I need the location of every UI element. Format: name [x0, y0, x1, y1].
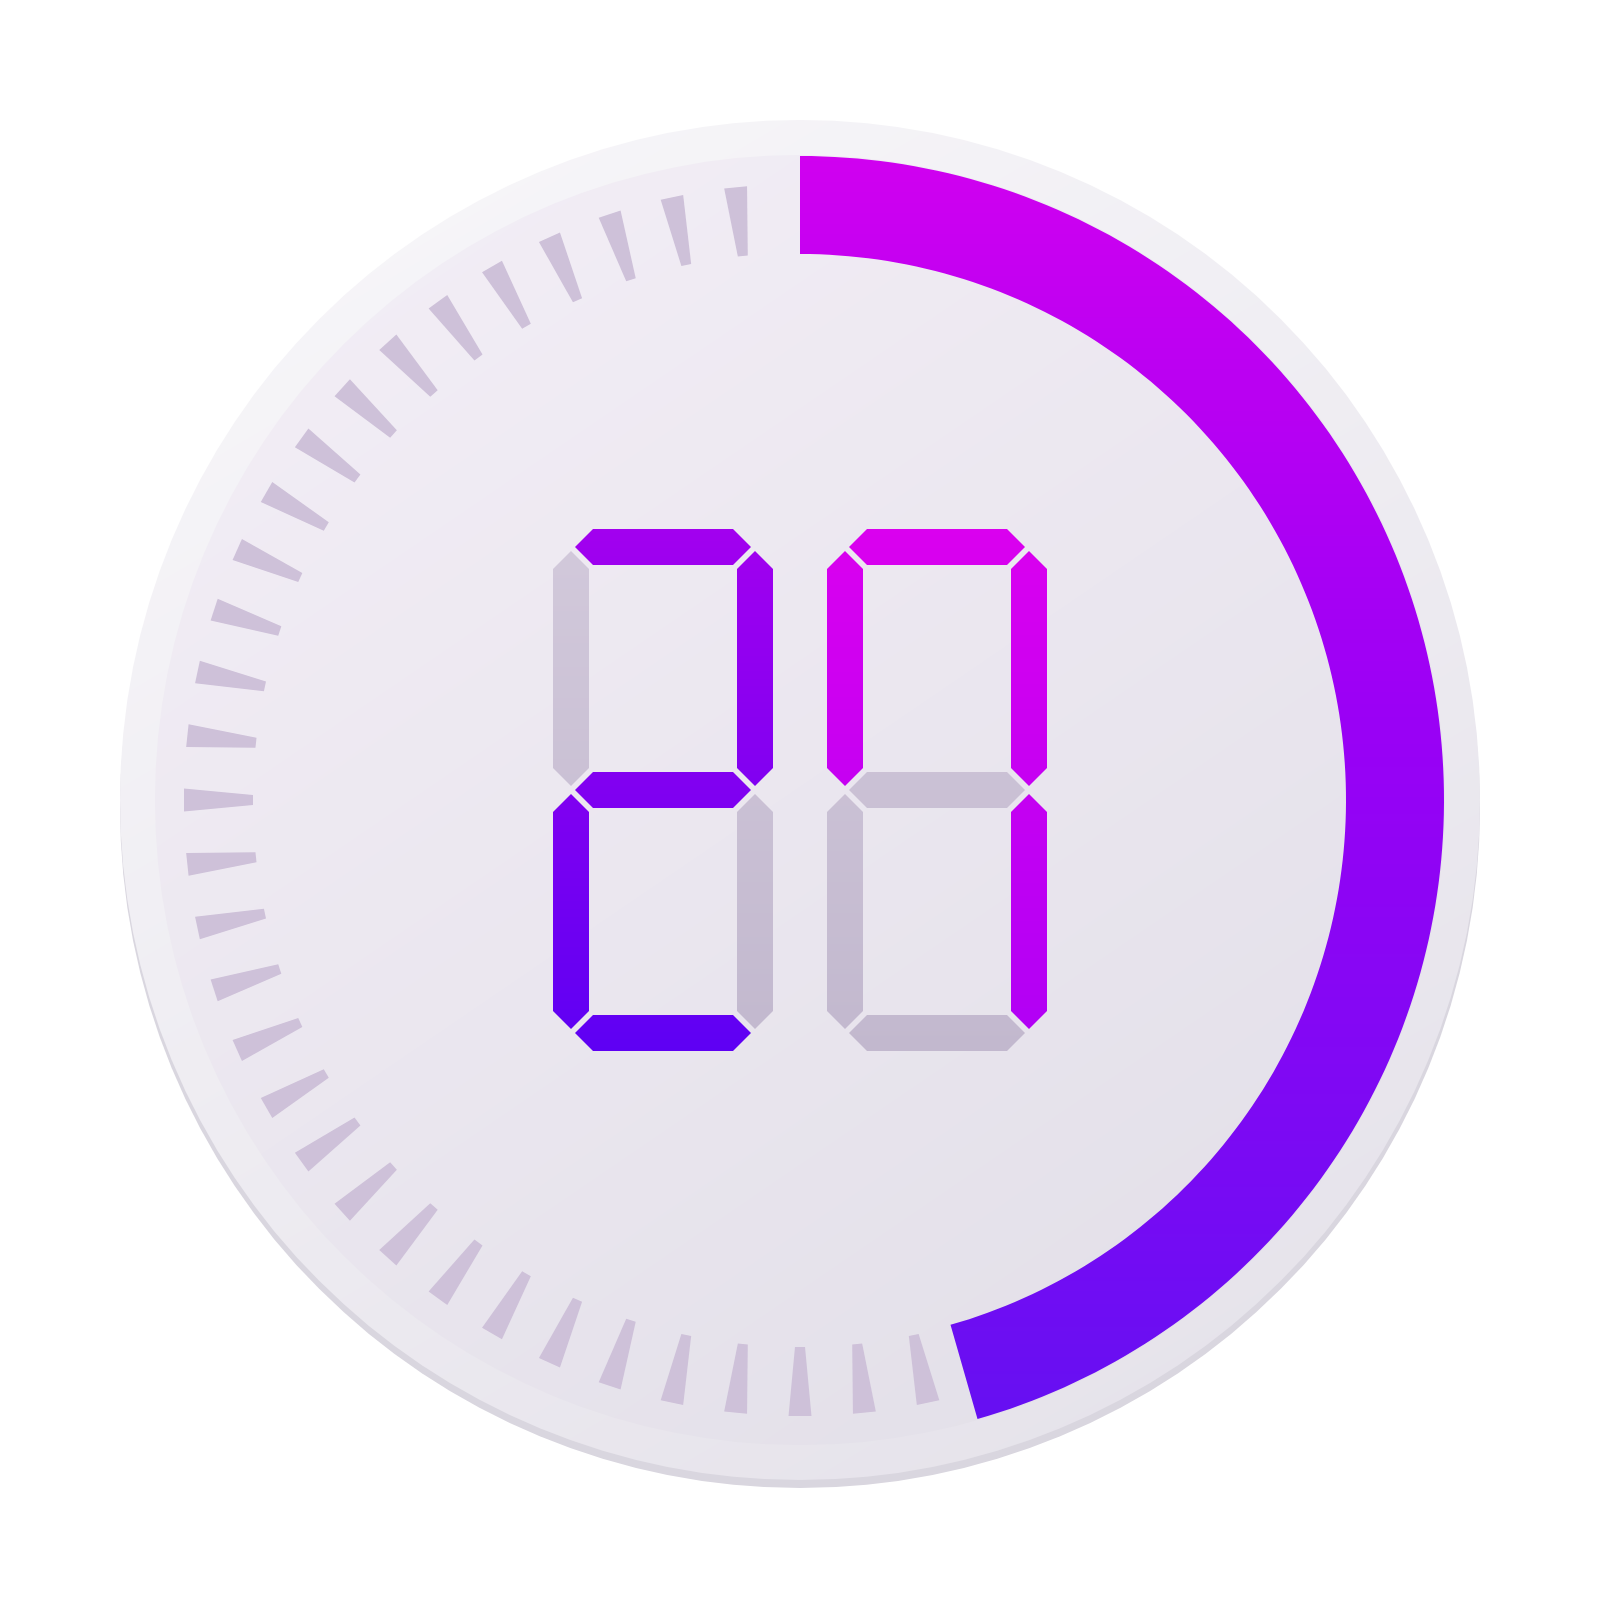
button[interactable]: Countdown timer, 24 remaining: [0, 0, 1600, 1600]
